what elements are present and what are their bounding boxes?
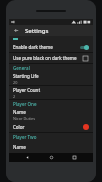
- button[interactable]: Home: [47, 153, 56, 162]
- staticText: Player One: [13, 101, 37, 107]
- staticText: Nicor Duties: [13, 116, 35, 121]
- button[interactable]: Player Count: [9, 86, 93, 99]
- button[interactable]: Name: [9, 141, 93, 153]
- staticText: 2: [13, 94, 16, 99]
- staticText: Name: [13, 144, 26, 150]
- staticText: Player Count: [13, 87, 41, 93]
- staticText: Use pure black on dark theme: [13, 55, 83, 61]
- staticText: Player Two: [13, 134, 37, 140]
- button[interactable]: Navigate up: [12, 26, 21, 35]
- staticText: Name: [13, 109, 26, 115]
- staticText: Color: [13, 124, 83, 130]
- button[interactable]: Back: [23, 153, 32, 162]
- button[interactable]: Color: [9, 121, 93, 132]
- button[interactable]: Starting Life: [9, 72, 93, 85]
- staticText: Starting Life: [13, 73, 39, 79]
- staticText: General: [13, 65, 30, 71]
- button[interactable]: Use pure black on dark theme: [9, 53, 93, 63]
- button[interactable]: Recent apps: [70, 153, 79, 162]
- button[interactable]: Enable dark theme: [9, 42, 93, 52]
- button[interactable]: Name: [9, 108, 93, 121]
- staticText: Enable dark theme: [13, 44, 79, 50]
- staticText: 20: [13, 80, 18, 85]
- staticText: Settings: [25, 27, 49, 35]
